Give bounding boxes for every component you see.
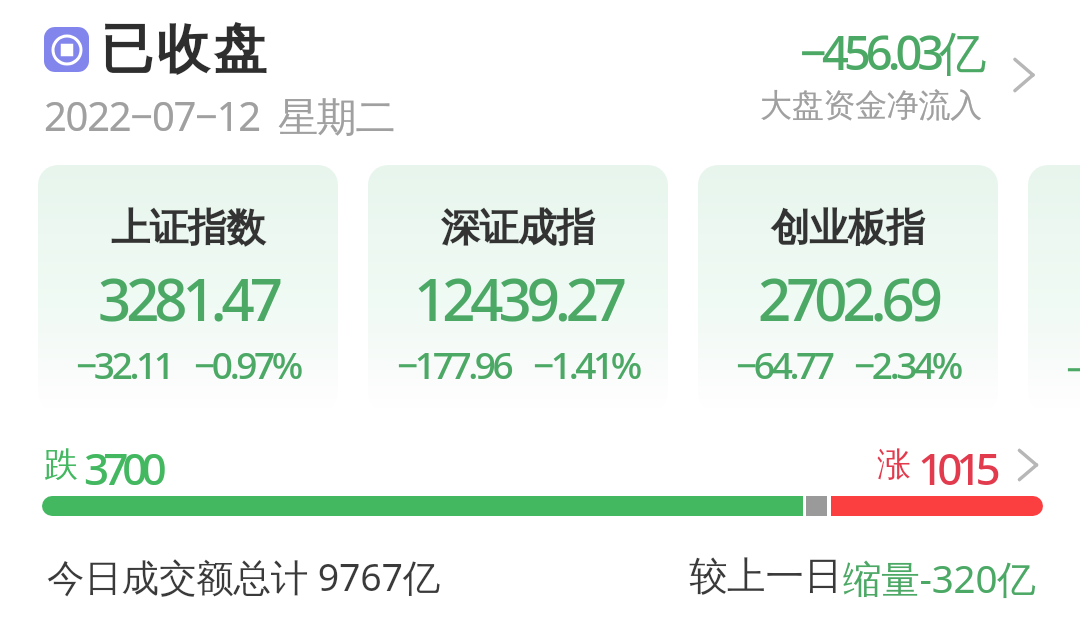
button[interactable]: Open capital flow detail — [999, 50, 1049, 100]
button[interactable]: Open advancers decliners detail — [1006, 443, 1050, 487]
staticText: 已收盘 — [100, 16, 271, 83]
button[interactable]: Market status — [44, 16, 464, 146]
button[interactable]: 较上一日 — [689, 552, 1036, 605]
staticText: 上证指数 — [111, 203, 265, 252]
staticText: −1.41% — [533, 339, 639, 389]
button[interactable]: 跌 — [44, 430, 204, 492]
staticText: 12439.27 — [414, 259, 623, 338]
staticText: −2.34% — [854, 339, 960, 389]
button[interactable]: 今日成交额总计 9767亿 — [44, 546, 444, 598]
staticText: 涨 — [877, 443, 911, 486]
staticText: 1015 — [918, 438, 995, 498]
staticText: −456.03亿 — [800, 20, 982, 84]
button[interactable]: 科创50 — [1028, 165, 1080, 412]
staticText: 较上一日 — [689, 552, 843, 601]
staticText: 深证成指 — [441, 203, 595, 252]
button[interactable]: Market status — [44, 27, 89, 72]
staticText: 创业板指 — [771, 203, 925, 252]
staticText: 2022−07−12 星期二 — [44, 88, 395, 143]
staticText: 3700 — [84, 438, 161, 498]
staticText: −24.38 — [1066, 343, 1080, 393]
staticText: −0.97% — [194, 339, 300, 389]
staticText: −177.96 — [397, 339, 511, 389]
staticText: 大盘资金净流入 — [760, 85, 982, 125]
button[interactable]: 创业板指 — [698, 165, 998, 412]
staticText: −64.77 — [736, 339, 832, 389]
button[interactable]: 涨 — [870, 430, 1045, 492]
staticText: 3281.47 — [98, 259, 278, 338]
staticText: 缩量-320亿 — [843, 552, 1036, 605]
staticText: 今日成交额总计 9767亿 — [47, 551, 440, 602]
staticText: 跌 — [44, 443, 78, 486]
button[interactable]: 深证成指 — [368, 165, 668, 412]
button[interactable]: 上证指数 — [38, 165, 338, 412]
button[interactable]: −456.03亿 — [700, 8, 1050, 128]
staticText: 2702.69 — [758, 259, 938, 338]
staticText: −32.11 — [76, 339, 172, 389]
